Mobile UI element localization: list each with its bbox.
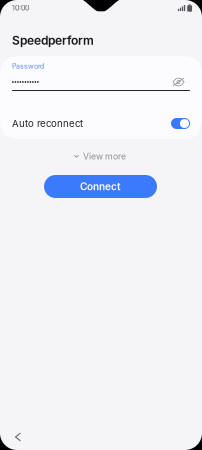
staticText: Password <box>12 62 44 70</box>
staticText: Auto reconnect <box>12 118 83 129</box>
staticText: View more <box>83 151 126 161</box>
staticText: Speedperform <box>12 33 94 47</box>
button[interactable]: Auto reconnect <box>12 116 190 131</box>
button[interactable]: Connect <box>44 175 157 198</box>
button[interactable]: Back <box>6 425 30 449</box>
staticText: Connect <box>80 180 121 193</box>
button[interactable]: Show password <box>170 75 190 89</box>
button[interactable]: View more <box>68 147 132 165</box>
staticText: 10:00 <box>12 4 29 12</box>
